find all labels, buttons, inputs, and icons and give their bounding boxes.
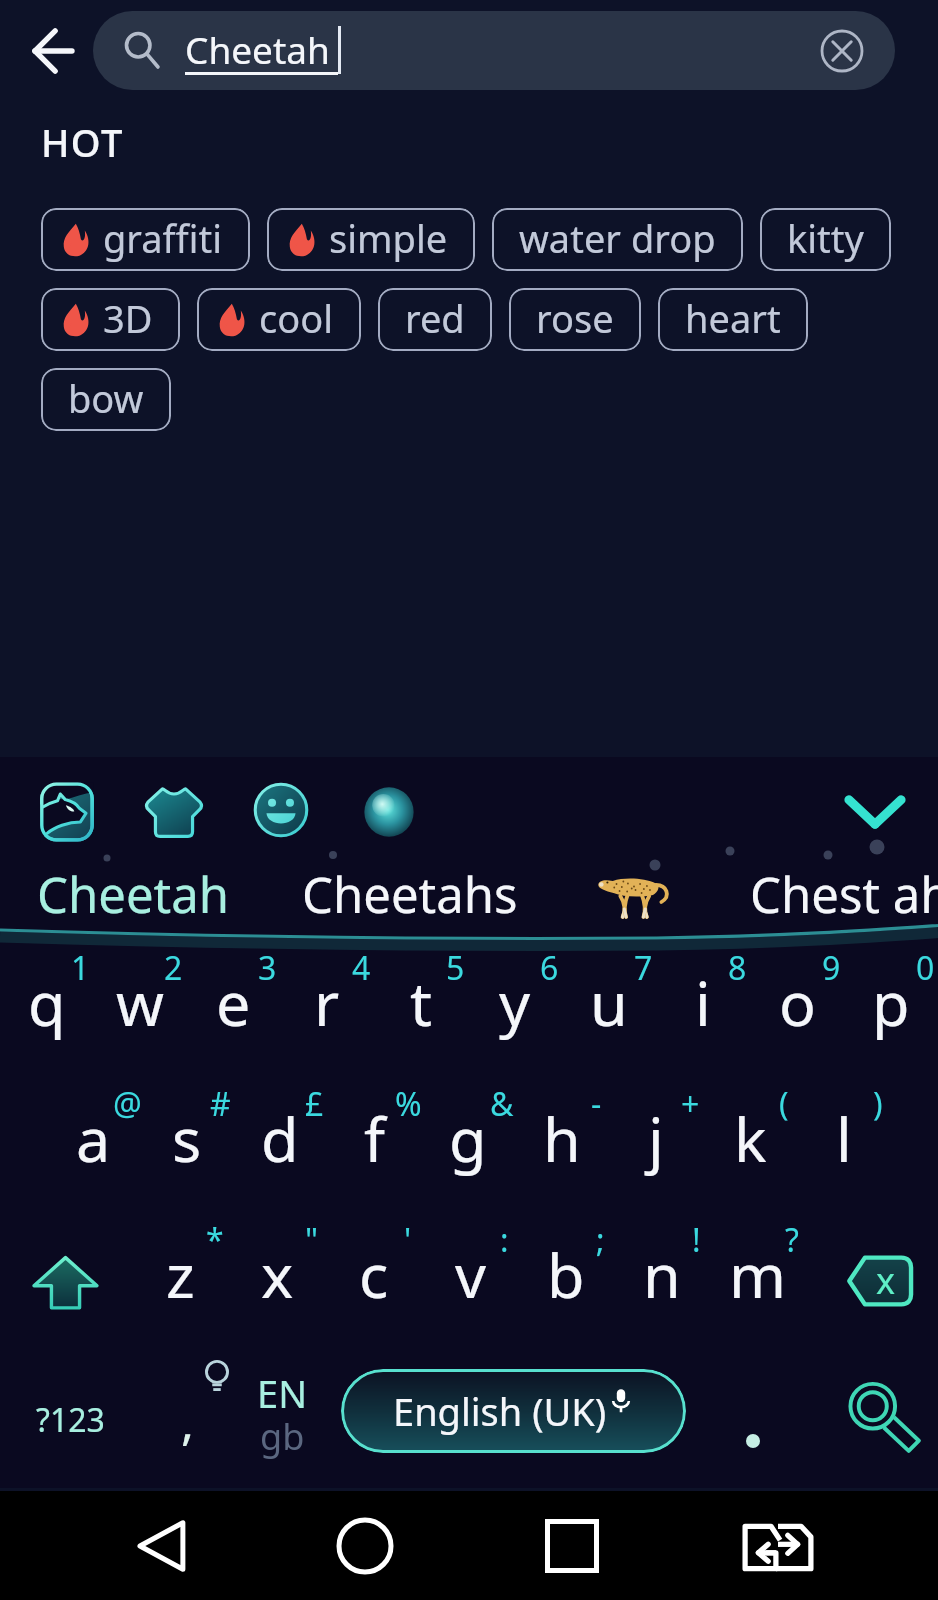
staticText: gb: [260, 1412, 305, 1461]
staticText: EN: [257, 1367, 308, 1419]
button[interactable]: l: [797, 1077, 891, 1213]
button[interactable]: water drop: [492, 208, 743, 271]
button[interactable]: Clear search: [819, 28, 865, 74]
button[interactable]: simple: [267, 208, 475, 271]
button[interactable]: d: [233, 1077, 327, 1213]
button[interactable]: Home: [321, 1491, 409, 1600]
staticText: 3D: [103, 292, 153, 344]
staticText: !: [692, 1218, 701, 1262]
button[interactable]: s: [140, 1077, 233, 1213]
button[interactable]: g: [421, 1077, 515, 1213]
button[interactable]: x: [229, 1213, 326, 1349]
staticText: 9: [822, 946, 841, 990]
button[interactable]: Collapse keyboard: [838, 775, 912, 849]
staticText: ;: [596, 1218, 605, 1262]
button[interactable]: Search: [820, 1345, 930, 1485]
button[interactable]: Back: [8, 10, 88, 90]
staticText: Chest ah: [750, 861, 938, 928]
button[interactable]: n: [614, 1213, 710, 1349]
button[interactable]: t: [374, 941, 468, 1077]
staticText: n: [643, 1233, 681, 1316]
button[interactable]: Recents: [528, 1491, 616, 1600]
staticText: *: [206, 1218, 224, 1262]
staticText: j: [648, 1097, 664, 1180]
staticText: w: [116, 961, 164, 1044]
staticText: Cheetah: [185, 24, 330, 74]
button[interactable]: a: [47, 1077, 140, 1213]
button[interactable]: o: [750, 941, 844, 1077]
staticText: :: [500, 1218, 509, 1262]
button[interactable]: v: [422, 1213, 518, 1349]
button[interactable]: Cheetah: [93, 11, 895, 90]
button[interactable]: 3D: [41, 288, 180, 351]
button[interactable]: w: [93, 941, 186, 1077]
staticText: s: [172, 1097, 202, 1180]
staticText: Cheetahs: [302, 861, 518, 928]
button[interactable]: r: [280, 941, 374, 1077]
staticText: 0: [916, 946, 935, 990]
button[interactable]: red: [378, 288, 492, 351]
button[interactable]: j: [609, 1077, 703, 1213]
staticText: red: [405, 292, 465, 344]
button[interactable]: Chest ah: [730, 853, 938, 935]
button[interactable]: Effects: [350, 773, 428, 851]
staticText: b: [547, 1233, 585, 1316]
button[interactable]: Emoji: [242, 773, 320, 851]
button[interactable]: Comma: [148, 1345, 258, 1485]
button[interactable]: bow: [41, 368, 171, 431]
staticText: 5: [446, 946, 465, 990]
button[interactable]: h: [515, 1077, 609, 1213]
button[interactable]: z: [132, 1213, 229, 1349]
button[interactable]: Stickers: [135, 773, 213, 851]
button[interactable]: Backspace: [806, 1213, 938, 1349]
staticText: d: [261, 1097, 299, 1180]
staticText: z: [166, 1233, 195, 1316]
button[interactable]: Shift: [0, 1213, 132, 1349]
button[interactable]: graffiti: [41, 208, 250, 271]
button[interactable]: q: [0, 941, 93, 1077]
button[interactable]: m: [710, 1213, 806, 1349]
staticText: heart: [685, 292, 781, 344]
staticText: c: [359, 1233, 389, 1316]
staticText: %: [395, 1082, 422, 1126]
button[interactable]: i: [656, 941, 750, 1077]
button[interactable]: English (UK): [341, 1369, 686, 1453]
staticText: rose: [536, 292, 614, 344]
button[interactable]: Language: [238, 1345, 333, 1485]
staticText: 8: [728, 946, 747, 990]
staticText: a: [76, 1097, 111, 1180]
button[interactable]: Cheetah: [22, 853, 244, 935]
button[interactable]: e: [186, 941, 280, 1077]
button[interactable]: p: [844, 941, 938, 1077]
staticText: f: [364, 1097, 385, 1180]
button[interactable]: Leopard emoji: [568, 853, 700, 935]
staticText: bow: [68, 372, 144, 424]
button[interactable]: cool: [197, 288, 361, 351]
button[interactable]: f: [327, 1077, 421, 1213]
button[interactable]: kitty: [760, 208, 891, 271]
staticText: #: [210, 1082, 231, 1126]
button[interactable]: Theme: [28, 773, 106, 851]
button[interactable]: Cheetahs: [286, 853, 534, 935]
button[interactable]: Period: [710, 1345, 800, 1485]
button[interactable]: rose: [509, 288, 641, 351]
button[interactable]: u: [562, 941, 656, 1077]
button[interactable]: c: [326, 1213, 422, 1349]
staticText: e: [216, 961, 251, 1044]
button[interactable]: k: [703, 1077, 797, 1213]
button[interactable]: Back: [118, 1491, 206, 1600]
staticText: r: [314, 961, 340, 1044]
staticText: k: [734, 1097, 767, 1180]
button[interactable]: Switch input method: [734, 1491, 822, 1600]
staticText: y: [499, 961, 531, 1044]
button[interactable]: b: [518, 1213, 614, 1349]
staticText: &: [490, 1082, 514, 1126]
button[interactable]: y: [468, 941, 562, 1077]
button[interactable]: ?123: [12, 1345, 130, 1485]
button[interactable]: heart: [658, 288, 808, 351]
staticText: o: [779, 961, 816, 1044]
staticText: 3: [258, 946, 277, 990]
staticText: g: [449, 1097, 487, 1180]
staticText: p: [872, 961, 910, 1044]
staticText: graffiti: [103, 212, 223, 264]
